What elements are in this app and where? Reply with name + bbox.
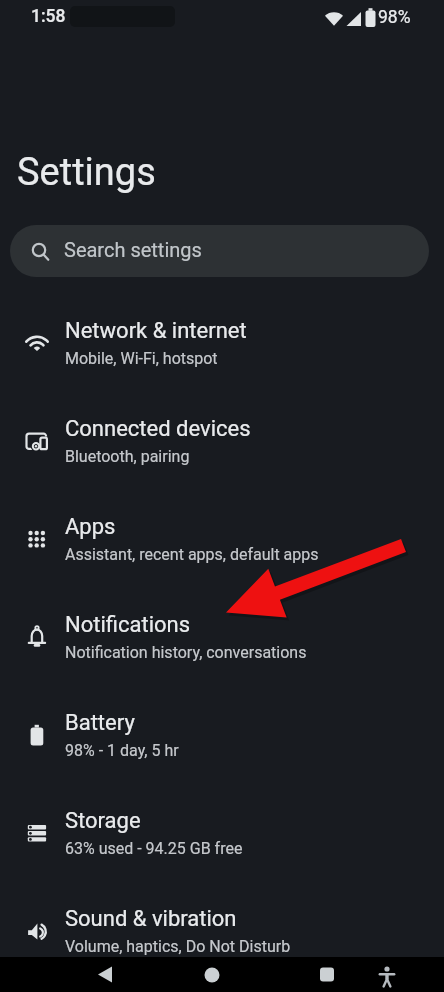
- button[interactable]: Network & internet: [0, 310, 444, 408]
- button[interactable]: Sound & vibration: [0, 898, 444, 992]
- button[interactable]: [90, 964, 120, 988]
- staticText: Apps: [65, 514, 116, 540]
- staticText: 98% - 1 day, 5 hr: [65, 741, 179, 760]
- button[interactable]: [312, 964, 342, 988]
- staticText: Battery: [65, 710, 135, 736]
- staticText: Storage: [65, 808, 141, 834]
- staticText: Bluetooth, pairing: [65, 447, 190, 466]
- button[interactable]: Storage: [0, 800, 444, 898]
- staticText: Volume, haptics, Do Not Disturb: [65, 937, 291, 956]
- staticText: Mobile, Wi-Fi, hotspot: [65, 349, 218, 368]
- staticText: Sound & vibration: [65, 906, 237, 932]
- button[interactable]: Search settings: [10, 225, 429, 277]
- staticText: Network & internet: [65, 318, 247, 344]
- staticText: 98%: [378, 7, 411, 28]
- staticText: Assistant, recent apps, default apps: [65, 545, 319, 564]
- button[interactable]: [372, 960, 402, 990]
- staticText: Notifications: [65, 612, 191, 638]
- staticText: 1:58: [31, 6, 66, 27]
- staticText: Search settings: [64, 238, 202, 261]
- button[interactable]: Notifications: [0, 604, 444, 702]
- staticText: Connected devices: [65, 416, 251, 442]
- staticText: Settings: [17, 150, 156, 195]
- button[interactable]: [197, 960, 227, 990]
- button[interactable]: Apps: [0, 506, 444, 604]
- button[interactable]: Battery: [0, 702, 444, 800]
- button[interactable]: Connected devices: [0, 408, 444, 506]
- staticText: Notification history, conversations: [65, 643, 307, 662]
- staticText: 63% used - 94.25 GB free: [65, 839, 243, 858]
